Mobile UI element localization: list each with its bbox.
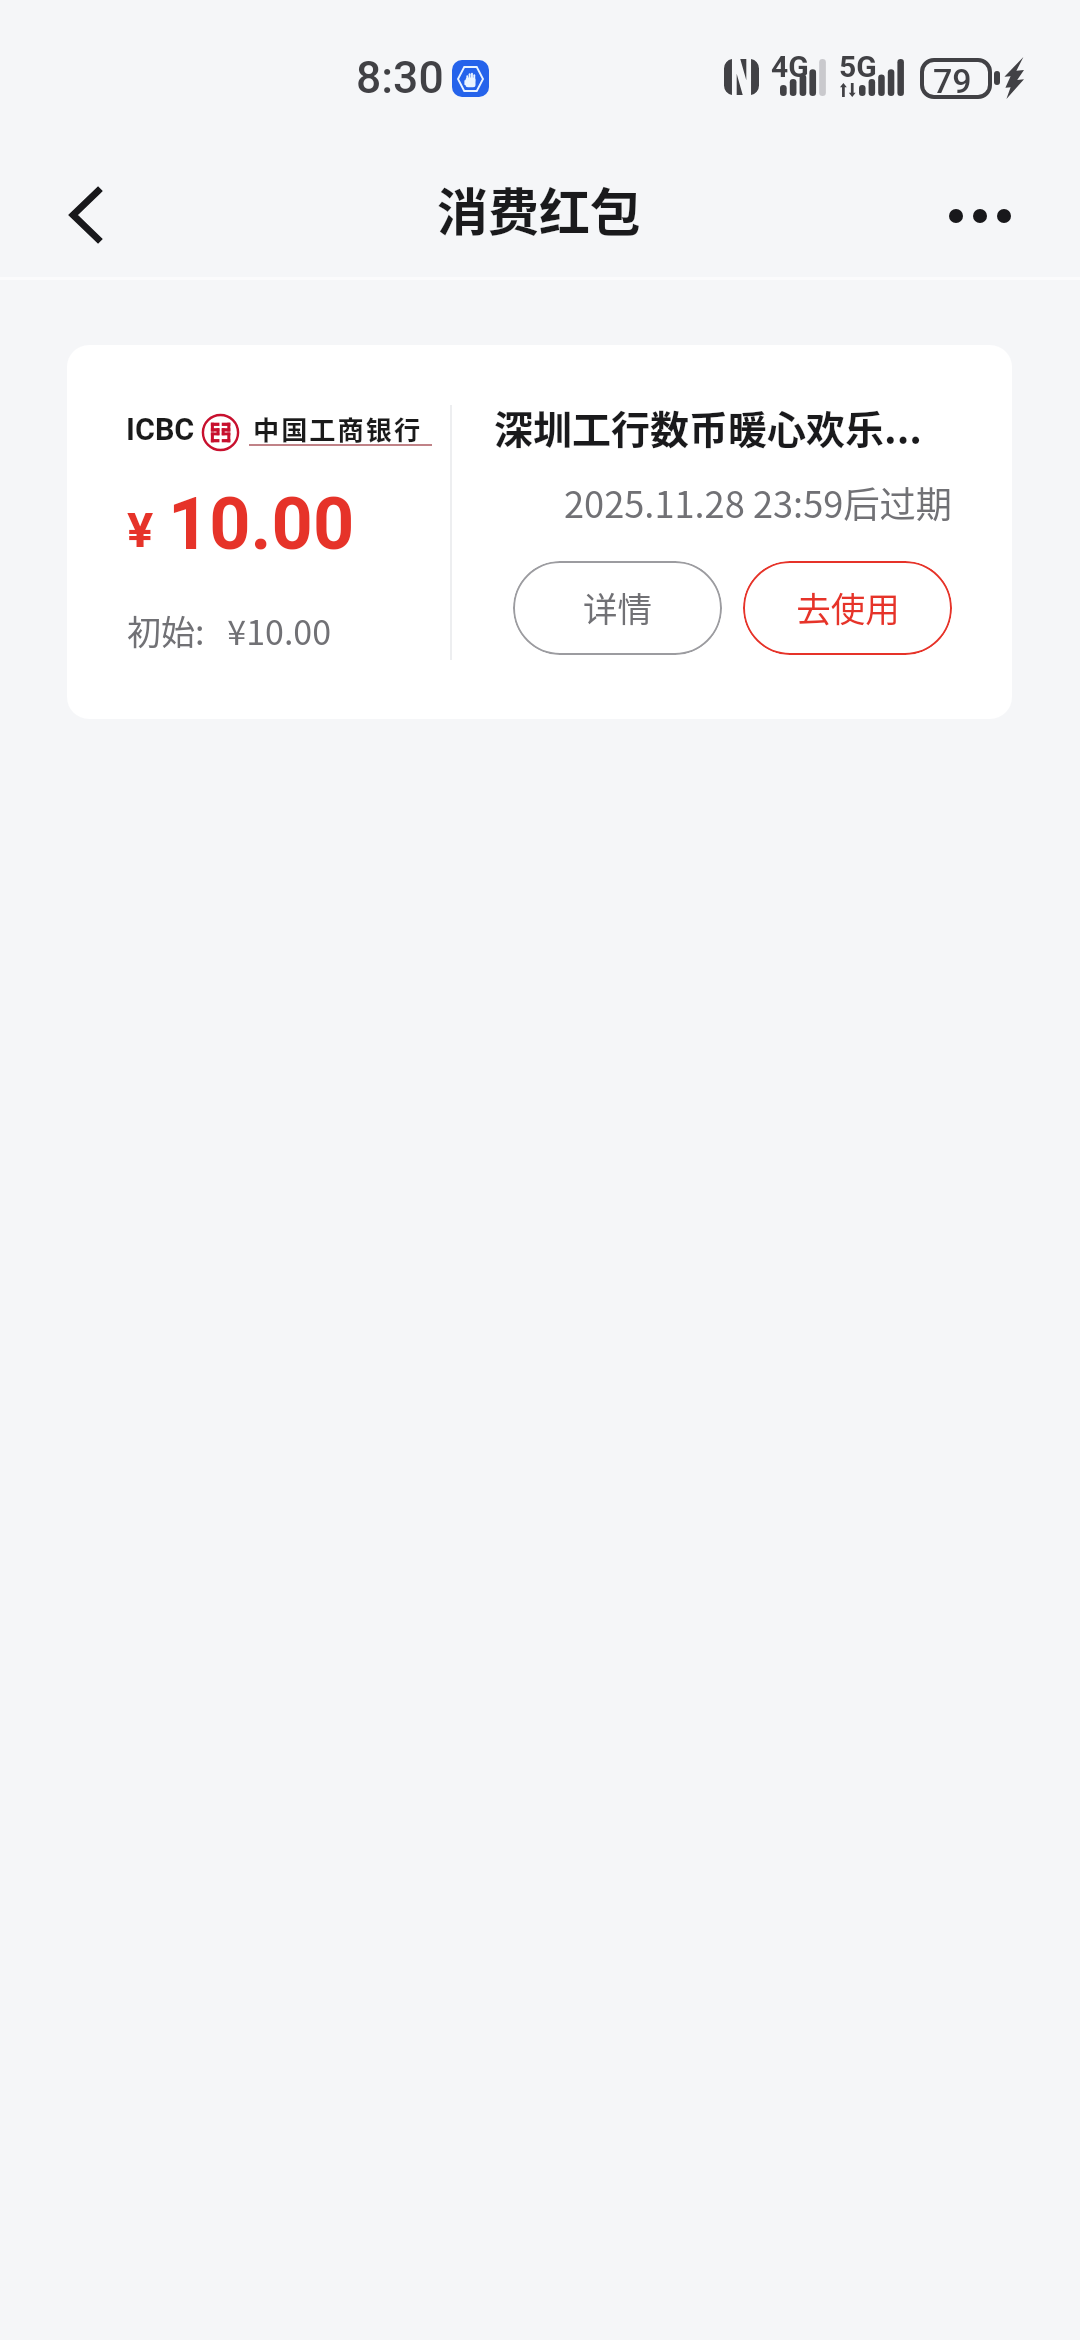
staticText: 去使用 <box>796 582 900 632</box>
staticText: 深圳工行数币暖心欢乐... <box>494 399 952 455</box>
staticText: 5G <box>839 49 877 84</box>
staticText: 消费红包 <box>437 172 642 246</box>
button[interactable]: 去使用 <box>743 561 952 655</box>
staticText: 10.00 <box>168 482 355 566</box>
button[interactable]: 详情 <box>513 561 722 655</box>
staticText: 2025.11.28 23:59后过期 <box>564 476 952 528</box>
staticText: 详情 <box>583 582 652 632</box>
staticText: 79 <box>933 61 972 101</box>
button[interactable]: More options <box>934 169 1026 263</box>
button[interactable]: ICBC <box>67 345 1012 719</box>
staticText: 初始: ¥10.00 <box>127 606 332 655</box>
staticText: 中国工商银行 <box>253 410 423 448</box>
staticText: 4G <box>771 49 809 84</box>
button[interactable]: Back <box>38 168 132 262</box>
staticText: 8:30 <box>356 52 444 104</box>
staticText: ICBC <box>126 412 195 448</box>
staticText: ¥ <box>127 502 154 559</box>
